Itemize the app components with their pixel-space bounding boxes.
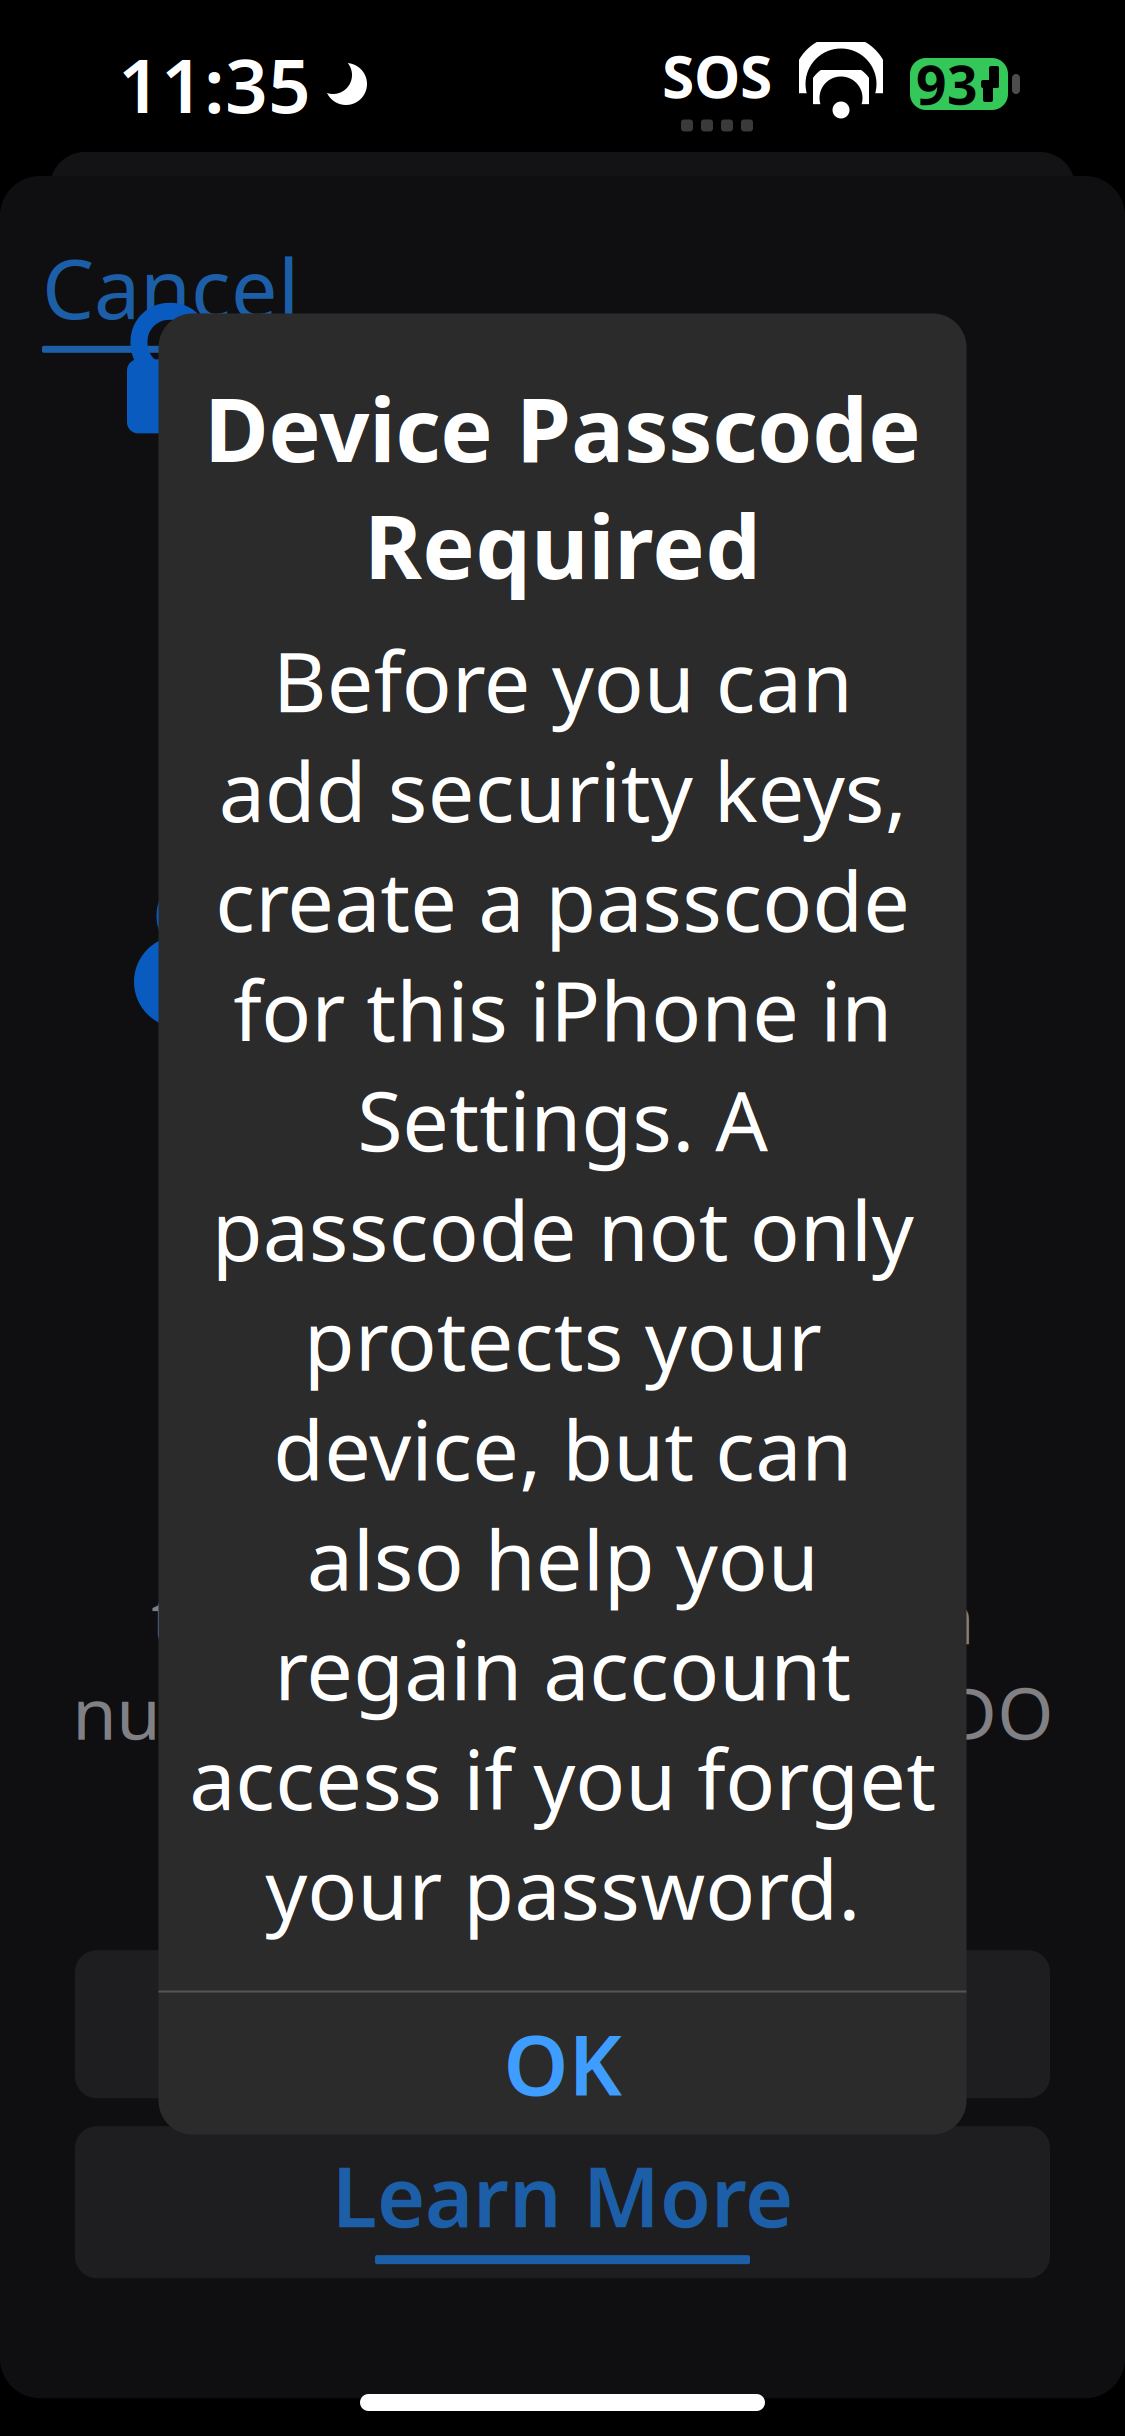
button[interactable]: Loading bbox=[75, 1950, 1050, 2098]
staticText: 93 bbox=[916, 49, 978, 119]
staticText: Learn More bbox=[332, 2140, 793, 2250]
staticText: Cancel bbox=[42, 232, 299, 342]
staticText: FIDO™ Certified is a trademark (register… bbox=[72, 1473, 1053, 1855]
staticText: Device Passcode Required bbox=[204, 369, 921, 603]
button[interactable]: Cancel bbox=[0, 176, 299, 383]
staticText: SOS bbox=[662, 36, 772, 114]
button[interactable]: OK bbox=[158, 1992, 966, 2134]
staticText: 11:35 bbox=[118, 34, 311, 134]
button[interactable]: Learn More bbox=[75, 2126, 1050, 2278]
staticText: OK bbox=[503, 2009, 621, 2118]
staticText: provide strong protection against phishi… bbox=[164, 303, 960, 852]
staticText: Before you can add security keys, create… bbox=[189, 625, 936, 1942]
